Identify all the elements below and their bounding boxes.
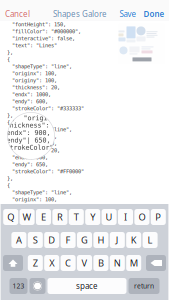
staticText: "originx": 100,: [12, 133, 57, 139]
button[interactable]: D: [44, 232, 59, 248]
staticText: {: [7, 56, 10, 62]
button[interactable]: Z: [28, 255, 43, 271]
staticText: "endy": 600,: [12, 98, 48, 104]
button[interactable]: B: [93, 255, 108, 271]
button[interactable]: T: [69, 209, 84, 225]
staticText: "endx": 900,: [12, 154, 48, 160]
staticText: S: [33, 234, 38, 246]
staticText: "thickness": 2: [1, 121, 57, 129]
staticText: "endy": 650,: [12, 161, 48, 167]
staticText: "strokeColor": "#FF0000": [12, 168, 84, 174]
staticText: },: [7, 112, 13, 118]
staticText: "originy": 100,: [12, 77, 57, 83]
button[interactable]: Shift: [3, 255, 23, 271]
staticText: Done: [143, 9, 164, 19]
staticText: "originx": 100,: [12, 70, 57, 76]
staticText: C: [65, 257, 71, 269]
button[interactable]: F: [61, 232, 76, 248]
staticText: },: [7, 175, 13, 181]
staticText: 123: [12, 282, 24, 290]
button[interactable]: E: [36, 209, 51, 225]
staticText: M: [130, 257, 138, 269]
button[interactable]: 123: [9, 278, 27, 294]
staticText: K: [131, 234, 137, 246]
button[interactable]: Save: [117, 8, 139, 20]
staticText: J: [116, 234, 119, 246]
button[interactable]: C: [61, 255, 76, 271]
staticText: },: [7, 49, 13, 55]
staticText: "endy"| 650,: [2, 136, 50, 144]
button[interactable]: Delete: [146, 255, 166, 271]
button[interactable]: Cancel: [0, 8, 35, 20]
staticText: "strokeColor":: [1, 144, 57, 151]
staticText: N: [114, 257, 121, 269]
button[interactable]: A: [11, 232, 26, 248]
staticText: Z: [33, 257, 38, 269]
staticText: V: [81, 257, 87, 269]
staticText: "shapeType": "line",: [12, 189, 72, 195]
staticText: "originx": 100,: [12, 196, 57, 202]
button[interactable]: W: [20, 209, 35, 225]
staticText: "strokeColor": "#333333": [12, 105, 84, 111]
staticText: "fontHeight": 150,: [12, 21, 66, 27]
button[interactable]: G: [77, 232, 92, 248]
staticText: {: [7, 119, 10, 125]
staticText: return: [134, 282, 154, 290]
staticText: "fillColor": "#000000",: [12, 28, 81, 34]
staticText: "thickness": 20,: [12, 84, 60, 90]
button[interactable]: N: [110, 255, 125, 271]
button[interactable]: H: [93, 232, 108, 248]
staticText: X: [49, 257, 54, 269]
staticText: "originy": 300,: [12, 140, 57, 146]
staticText: F: [66, 234, 71, 246]
button[interactable]: R: [52, 209, 67, 225]
button[interactable]: S: [28, 232, 43, 248]
staticText: P: [155, 211, 161, 223]
staticText: {: [7, 182, 10, 188]
button[interactable]: return: [128, 278, 159, 294]
staticText: O: [138, 211, 145, 223]
button[interactable]: I: [118, 209, 133, 225]
button[interactable]: Q: [3, 209, 18, 225]
button[interactable]: U: [102, 209, 117, 225]
staticText: I: [124, 211, 127, 223]
staticText: Save: [119, 9, 136, 19]
staticText: "thickness": 20,: [12, 147, 60, 153]
staticText: T: [74, 211, 79, 223]
button[interactable]: Y: [85, 209, 100, 225]
staticText: "endx": 900,: [2, 129, 50, 136]
staticText: D: [48, 234, 55, 246]
staticText: W: [23, 211, 32, 223]
button[interactable]: O: [134, 209, 149, 225]
staticText: }, "originy":: [7, 114, 63, 122]
staticText: "shapeType": "line",: [12, 63, 72, 69]
button[interactable]: M: [126, 255, 141, 271]
staticText: U: [106, 211, 113, 223]
staticText: Q: [7, 211, 14, 223]
button[interactable]: K: [126, 232, 141, 248]
staticText: "shapeType": "line",: [12, 126, 72, 132]
staticText: A: [16, 234, 22, 246]
button[interactable]: Emoji keyboard: [29, 278, 45, 294]
button[interactable]: X: [44, 255, 59, 271]
staticText: Shapes Galore: [53, 9, 107, 19]
button[interactable]: space: [47, 278, 126, 294]
button[interactable]: P: [151, 209, 166, 225]
staticText: Y: [90, 211, 95, 223]
staticText: "interactive": false,: [12, 35, 75, 41]
staticText: "endx": 1000,: [12, 91, 51, 97]
staticText: R: [57, 211, 63, 223]
button[interactable]: Done: [141, 8, 167, 20]
staticText: Cancel: [5, 9, 30, 19]
staticText: },: [5, 151, 13, 159]
staticText: "text": "Lines": [12, 42, 57, 48]
staticText: space: [76, 281, 98, 291]
staticText: E: [41, 211, 46, 223]
staticText: H: [97, 234, 104, 246]
button[interactable]: J: [110, 232, 125, 248]
button[interactable]: V: [77, 255, 92, 271]
staticText: G: [81, 234, 88, 246]
staticText: L: [148, 234, 153, 246]
staticText: B: [98, 257, 104, 269]
button[interactable]: L: [143, 232, 158, 248]
